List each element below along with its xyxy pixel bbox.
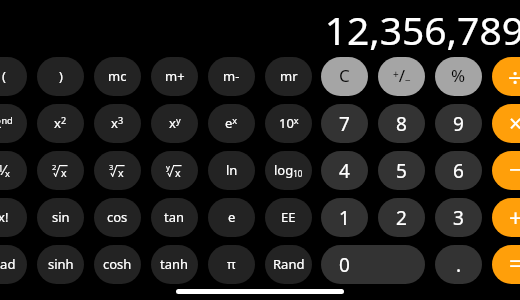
staticText: sin [52,208,70,226]
button[interactable]: +/− [378,57,425,96]
button[interactable]: 4 [321,151,368,190]
staticText: C [339,64,350,87]
staticText: cos [107,208,128,226]
staticText: 9 [453,111,464,137]
button[interactable]: Rand [265,245,312,284]
button[interactable]: EE [265,198,312,237]
staticText: 6 [453,158,464,184]
staticText: e [228,208,236,226]
staticText: ÷ [508,60,520,94]
button[interactable]: ln [208,151,255,190]
staticText: ex [225,114,238,132]
staticText: tan [164,208,185,226]
staticText: 2 [52,162,57,172]
button[interactable]: 2 [378,198,425,237]
staticText: y [166,162,170,172]
staticText: 3 [453,205,464,231]
button[interactable]: ÷ [492,57,520,96]
staticText: 1 [339,205,350,231]
staticText: 12,356,789 [324,3,520,56]
button[interactable]: % [435,57,482,96]
staticText: ( [2,67,6,85]
button[interactable]: ex [208,104,255,143]
staticText: xy [169,114,181,132]
button[interactable]: tanh [151,245,198,284]
staticText: Rand [273,255,305,273]
button[interactable]: 7 [321,104,368,143]
button[interactable]: × [492,104,520,143]
button[interactable]: x2 [37,104,84,143]
staticText: % [451,64,466,87]
staticText: x [118,166,124,177]
staticText: + [509,202,520,233]
staticText: × [509,107,520,138]
staticText: − [509,153,520,184]
button[interactable]: cosh [94,245,141,284]
button[interactable]: y [151,151,198,190]
staticText: 3 [109,162,114,172]
staticText: 2nd [0,114,13,132]
button[interactable]: ( [0,57,27,96]
button[interactable]: 2nd [0,104,27,143]
staticText: 4 [339,158,350,184]
staticText: 8 [396,111,407,137]
button[interactable]: sinh [37,245,84,284]
button[interactable]: . [435,245,482,284]
staticText: +/− [393,64,411,87]
button[interactable]: 3 [435,198,482,237]
button[interactable]: e [208,198,255,237]
staticText: Rad [0,255,16,273]
button[interactable]: + [492,198,520,237]
button[interactable]: 6 [435,151,482,190]
button[interactable]: mr [265,57,312,96]
button[interactable]: ) [37,57,84,96]
staticText: mr [280,67,298,85]
staticText: x3 [111,114,124,132]
button[interactable]: x3 [94,104,141,143]
button[interactable]: sin [37,198,84,237]
button[interactable]: 1 [321,198,368,237]
button[interactable]: − [492,151,520,190]
staticText: cosh [103,255,132,273]
staticText: log10 [274,161,303,179]
staticText: x2 [54,114,67,132]
staticText: ) [59,67,63,85]
button[interactable]: 1⁄x [0,151,27,190]
button[interactable]: = [492,245,520,284]
staticText: π [227,255,236,273]
staticText: EE [281,208,296,226]
staticText: sinh [48,255,74,273]
button[interactable]: 2 [37,151,84,190]
staticText: m- [223,67,240,85]
button[interactable]: 9 [435,104,482,143]
button[interactable]: m+ [151,57,198,96]
button[interactable]: x! [0,198,27,237]
button[interactable]: cos [94,198,141,237]
button[interactable]: 10x [265,104,312,143]
button[interactable]: xy [151,104,198,143]
staticText: x [61,166,67,177]
button[interactable]: π [208,245,255,284]
button[interactable]: 8 [378,104,425,143]
staticText: tanh [160,255,189,273]
button[interactable]: mc [94,57,141,96]
button[interactable]: 0 [321,245,425,284]
button[interactable]: log10 [265,151,312,190]
staticText: . [456,252,462,278]
staticText: 5 [396,158,407,184]
staticText: 7 [339,111,350,137]
staticText: 10x [279,114,299,132]
staticText: 2 [396,205,407,231]
staticText: mc [108,67,127,85]
button[interactable]: 3 [94,151,141,190]
button[interactable]: tan [151,198,198,237]
staticText: x [175,166,181,177]
staticText: 0 [339,252,350,278]
button[interactable]: m- [208,57,255,96]
staticText: x! [0,208,9,226]
staticText: 1⁄x [0,161,10,179]
button[interactable]: 5 [378,151,425,190]
button[interactable]: C [321,57,368,96]
staticText: ln [226,161,238,179]
button[interactable]: Rad [0,245,27,284]
